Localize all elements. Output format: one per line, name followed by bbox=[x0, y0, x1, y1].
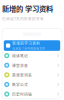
staticText: 历史时间轴 bbox=[12, 91, 32, 97]
staticText: 阅读笔记 bbox=[12, 53, 28, 58]
button[interactable]: 阅读笔记 bbox=[2, 51, 62, 60]
button[interactable]: 新增的学习资料 bbox=[2, 40, 62, 51]
staticText: 数学公式 bbox=[12, 82, 28, 87]
staticText: 已添加 7 天内的所有文件 bbox=[12, 46, 45, 50]
staticText: 已添加7天内所有的号有 bbox=[2, 16, 44, 21]
button[interactable]: 课堂录音 bbox=[2, 60, 62, 70]
button[interactable]: 数学公式 bbox=[2, 80, 62, 89]
staticText: 英语单词表 bbox=[12, 72, 32, 78]
staticText: 新增的 学习资料 bbox=[2, 3, 53, 14]
staticText: 新增的学习资料 bbox=[12, 41, 40, 46]
button[interactable]: 英语单词表 bbox=[2, 70, 62, 80]
button[interactable]: 历史时间轴 bbox=[2, 89, 62, 99]
staticText: 搜索所有资料 bbox=[23, 32, 41, 37]
staticText: 课堂录音 bbox=[12, 63, 28, 68]
